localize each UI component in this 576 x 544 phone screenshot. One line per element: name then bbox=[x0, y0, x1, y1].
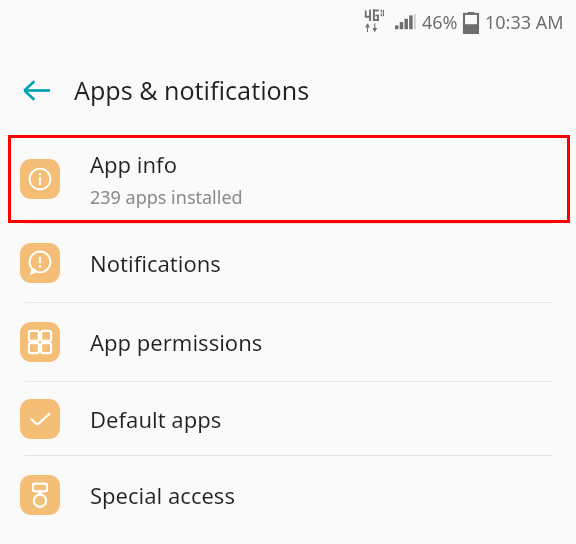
button[interactable]: Notifications bbox=[0, 224, 576, 302]
button[interactable]: Default apps bbox=[0, 382, 576, 455]
staticText: 10:33 AM bbox=[485, 10, 564, 35]
button[interactable]: App permissions bbox=[0, 303, 576, 381]
button[interactable]: Special access bbox=[0, 456, 576, 534]
staticText: Apps & notifications bbox=[74, 73, 310, 107]
staticText: App permissions bbox=[90, 327, 263, 357]
staticText: App info bbox=[90, 149, 177, 179]
staticText: 46% bbox=[422, 10, 458, 35]
button[interactable]: Back bbox=[14, 68, 58, 112]
staticText: Default apps bbox=[90, 404, 222, 434]
staticText: Notifications bbox=[90, 248, 221, 278]
button[interactable]: App info bbox=[0, 135, 576, 223]
staticText: 239 apps installed bbox=[90, 185, 243, 210]
staticText: Special access bbox=[90, 480, 235, 510]
